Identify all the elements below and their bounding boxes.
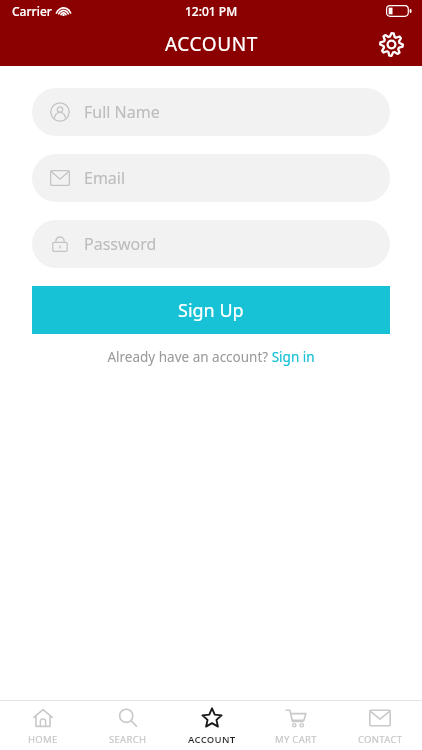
button[interactable]: HOME bbox=[0, 701, 85, 746]
staticText: Sign Up bbox=[178, 298, 244, 323]
button[interactable]: Sign Up bbox=[32, 286, 390, 334]
button[interactable]: Full Name bbox=[32, 88, 390, 136]
button[interactable]: CONTACT bbox=[338, 701, 422, 746]
button[interactable]: Settings bbox=[372, 25, 410, 63]
staticText: Full Name bbox=[84, 101, 160, 123]
staticText: CONTACT bbox=[358, 733, 403, 746]
staticText: HOME bbox=[28, 733, 58, 746]
staticText: Email bbox=[84, 167, 126, 189]
staticText: Already have an account? Sign in bbox=[107, 348, 315, 366]
button[interactable]: ACCOUNT bbox=[170, 701, 254, 746]
staticText: MY CART bbox=[275, 733, 317, 746]
staticText: SEARCH bbox=[109, 733, 147, 746]
button[interactable]: Email bbox=[32, 154, 390, 202]
button[interactable]: Already have an account? Sign in bbox=[107, 348, 315, 366]
staticText: Carrier bbox=[12, 3, 52, 19]
button[interactable]: SEARCH bbox=[85, 701, 170, 746]
staticText: Password bbox=[84, 233, 157, 255]
staticText: ACCOUNT bbox=[188, 733, 236, 746]
button[interactable]: MY CART bbox=[254, 701, 338, 746]
button[interactable]: Password bbox=[32, 220, 390, 268]
staticText: 12:01 PM bbox=[185, 3, 238, 19]
staticText: ACCOUNT bbox=[165, 31, 258, 57]
